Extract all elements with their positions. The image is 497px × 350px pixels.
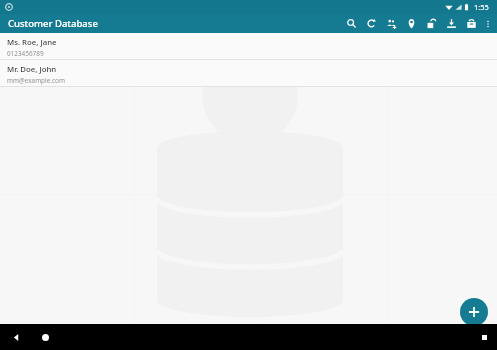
button[interactable]: Location	[401, 14, 421, 33]
button[interactable]: Ms. Roe, Jane	[0, 33, 497, 59]
button[interactable]: Customer Database	[8, 17, 98, 30]
button[interactable]: Archive	[461, 14, 481, 33]
button[interactable]: Unlock	[421, 14, 441, 33]
staticText: 1:55	[474, 2, 489, 12]
button[interactable]: Add customer	[460, 298, 488, 326]
button[interactable]: Back	[9, 330, 23, 344]
staticText: 0123456789	[7, 49, 44, 58]
staticText: mm@example.com	[7, 76, 65, 85]
button[interactable]: Import	[441, 14, 461, 33]
button[interactable]: More options	[481, 14, 494, 33]
button[interactable]: Add group	[381, 14, 401, 33]
staticText: Mr. Doe, John	[7, 64, 57, 75]
button[interactable]: Home	[38, 330, 52, 344]
button[interactable]: Search	[341, 14, 361, 33]
button[interactable]: Refresh	[361, 14, 381, 33]
button[interactable]: Mr. Doe, John	[0, 60, 497, 86]
staticText: Ms. Roe, Jane	[7, 37, 57, 48]
staticText: Customer Database	[8, 17, 98, 30]
button[interactable]: Recent apps	[477, 330, 491, 344]
